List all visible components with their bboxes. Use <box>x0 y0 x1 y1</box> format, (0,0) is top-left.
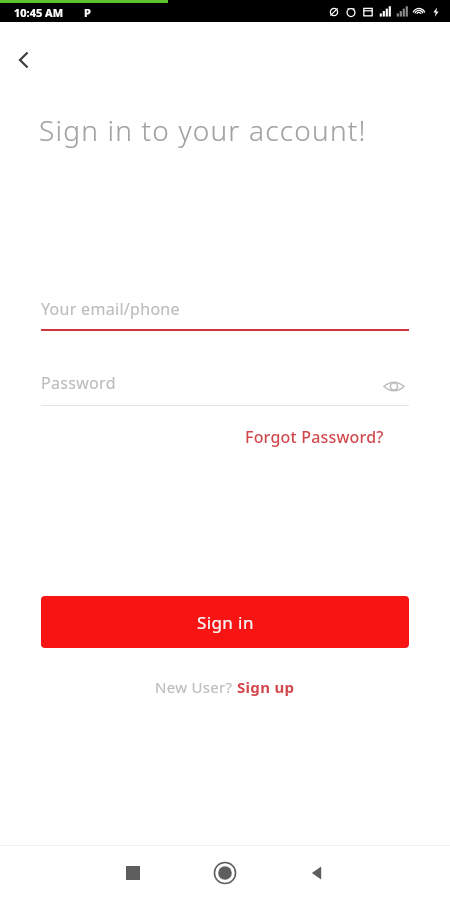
button[interactable]: Sign in <box>41 596 409 648</box>
staticText: New User? <box>155 677 237 697</box>
staticText: 10:45 AM <box>14 5 64 20</box>
button[interactable]: Sign up <box>237 677 295 697</box>
button[interactable]: Back <box>295 851 339 895</box>
staticText: Password <box>41 372 116 394</box>
button[interactable]: Home <box>203 851 247 895</box>
button[interactable]: Back <box>2 38 46 82</box>
staticText: P <box>84 5 91 20</box>
button[interactable]: Show password <box>372 365 416 409</box>
staticText: Sign in <box>197 611 254 634</box>
button[interactable]: Your email/phone <box>41 298 409 331</box>
staticText: Your email/phone <box>41 298 180 320</box>
button[interactable]: Password <box>41 372 409 406</box>
button[interactable]: Forgot Password? <box>241 422 388 452</box>
staticText: Sign up <box>237 677 295 697</box>
staticText: Sign in to your account! <box>39 111 367 149</box>
staticText: Forgot Password? <box>245 426 384 448</box>
button[interactable]: Recents <box>111 851 155 895</box>
